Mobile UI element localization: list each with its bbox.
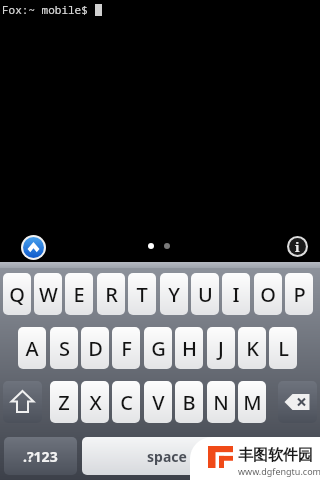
button[interactable]: Backspace xyxy=(278,381,317,423)
button[interactable]: space xyxy=(82,437,252,475)
staticText: T xyxy=(136,281,148,308)
staticText: Fox:~ mobile$ xyxy=(2,2,95,17)
button[interactable]: G xyxy=(144,327,172,369)
button[interactable]: N xyxy=(207,381,235,423)
staticText: I xyxy=(232,281,240,308)
staticText: X xyxy=(89,389,102,416)
button[interactable]: H xyxy=(175,327,203,369)
staticText: space xyxy=(147,447,187,466)
button[interactable]: L xyxy=(269,327,297,369)
button[interactable]: Show keyboard xyxy=(21,235,46,260)
button[interactable]: M xyxy=(238,381,266,423)
staticText: E xyxy=(73,281,85,308)
staticText: L xyxy=(278,335,289,362)
staticText: N xyxy=(213,389,229,416)
button[interactable]: I xyxy=(222,273,250,315)
staticText: A xyxy=(25,335,39,362)
staticText: B xyxy=(182,389,196,416)
staticText: Y xyxy=(168,281,180,308)
staticText: U xyxy=(198,281,213,308)
staticText: G xyxy=(151,335,166,362)
button[interactable]: F xyxy=(112,327,140,369)
button[interactable]: Y xyxy=(160,273,188,315)
staticText: Z xyxy=(58,389,70,416)
staticText: R xyxy=(105,281,118,308)
button[interactable]: U xyxy=(191,273,219,315)
staticText: M xyxy=(243,389,262,416)
button[interactable]: Shift xyxy=(3,381,42,423)
button[interactable]: Z xyxy=(50,381,78,423)
staticText: J xyxy=(218,335,224,362)
button[interactable]: S xyxy=(50,327,78,369)
button[interactable]: W xyxy=(34,273,62,315)
staticText: Q xyxy=(9,281,25,308)
staticText: S xyxy=(59,335,70,362)
button[interactable]: O xyxy=(254,273,282,315)
button[interactable]: K xyxy=(238,327,266,369)
button[interactable]: X xyxy=(81,381,109,423)
button[interactable]: E xyxy=(65,273,93,315)
staticText: F xyxy=(121,335,132,362)
button[interactable]: .?123 xyxy=(4,437,77,475)
button[interactable]: return xyxy=(257,437,317,475)
staticText: C xyxy=(120,389,133,416)
button[interactable]: R xyxy=(97,273,125,315)
button[interactable]: C xyxy=(112,381,140,423)
staticText: 丰图软件园 xyxy=(238,446,313,465)
button[interactable]: A xyxy=(18,327,46,369)
staticText: .?123 xyxy=(23,447,58,466)
button[interactable]: V xyxy=(144,381,172,423)
staticText: D xyxy=(88,335,103,362)
button[interactable]: T xyxy=(128,273,156,315)
button[interactable]: D xyxy=(81,327,109,369)
staticText: P xyxy=(293,281,306,308)
staticText: www.dgfengtu.com xyxy=(238,465,320,477)
staticText: i xyxy=(295,238,300,256)
staticText: K xyxy=(246,335,259,362)
button[interactable]: Q xyxy=(3,273,31,315)
staticText: W xyxy=(39,281,58,308)
button[interactable]: B xyxy=(175,381,203,423)
staticText: H xyxy=(182,335,197,362)
staticText: O xyxy=(260,281,276,308)
button[interactable]: J xyxy=(207,327,235,369)
staticText: return xyxy=(265,447,310,466)
button[interactable]: P xyxy=(285,273,313,315)
staticText: V xyxy=(152,389,165,416)
button[interactable]: Info xyxy=(287,236,308,257)
